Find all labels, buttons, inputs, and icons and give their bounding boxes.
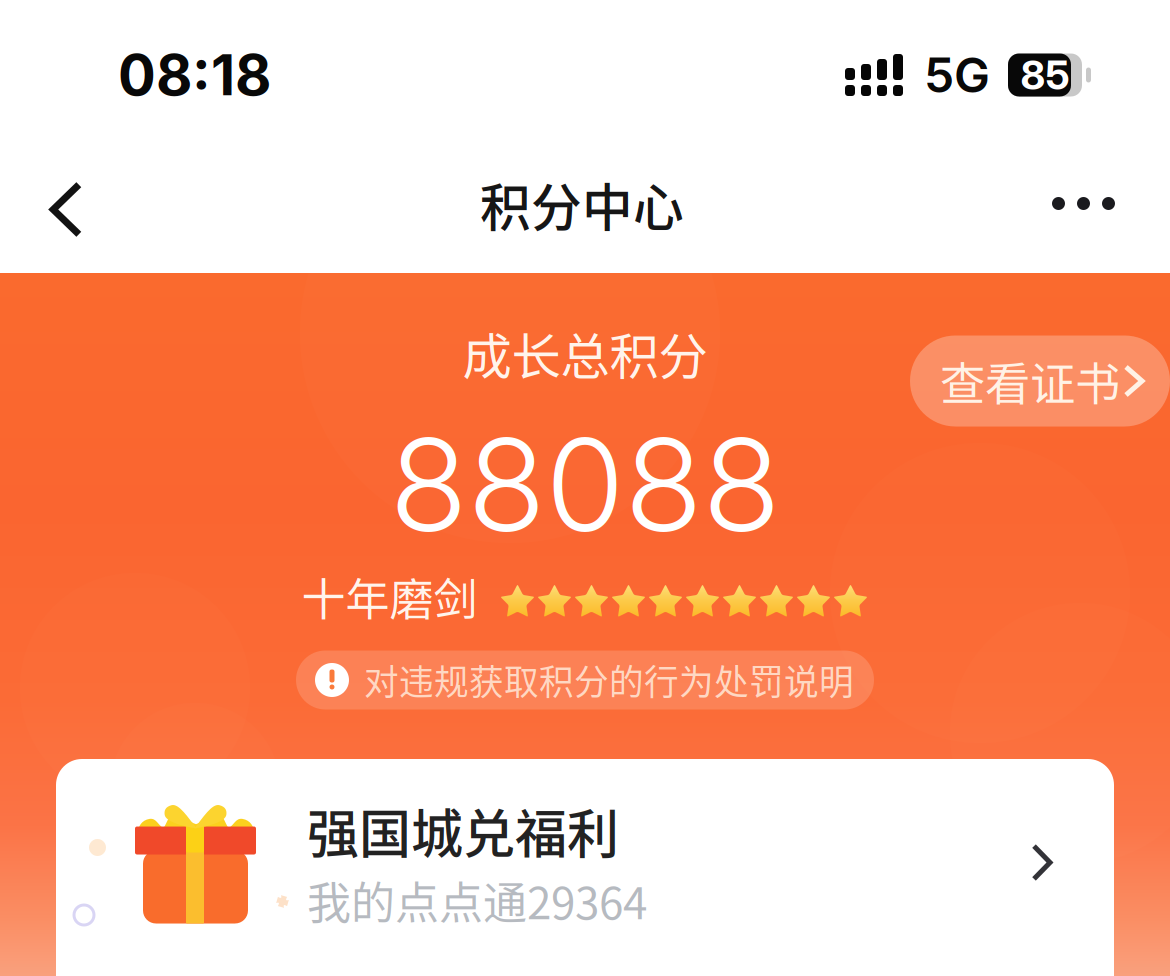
staticText: 积分中心 — [480, 168, 684, 241]
staticText: 十年磨剑 — [301, 565, 477, 628]
staticText: 08:18 — [118, 41, 271, 109]
button[interactable]: More options — [1018, 161, 1170, 262]
button[interactable]: 强国城兑福利 — [56, 759, 1114, 976]
staticText: 对违规获取积分的行为处罚说明 — [364, 655, 854, 705]
staticText: 查看证书 — [940, 348, 1120, 414]
staticText: 85 — [1020, 51, 1069, 99]
staticText: 成长总积分 — [462, 317, 707, 389]
staticText: 88088 — [389, 407, 780, 562]
button[interactable]: 对违规获取积分的行为处罚说明 — [296, 668, 874, 727]
staticText: 强国城兑福利 — [307, 793, 619, 868]
button[interactable]: 查看证书 — [910, 307, 1170, 398]
button[interactable]: Back — [0, 155, 116, 267]
staticText: 5G — [924, 46, 990, 104]
staticText: 我的点点通29364 — [307, 868, 647, 932]
